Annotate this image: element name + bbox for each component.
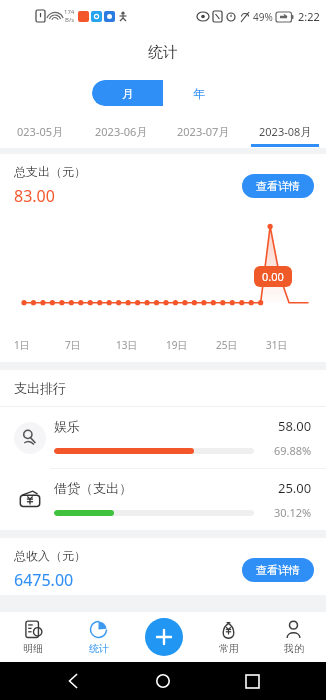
staticText: 6475.00 — [14, 569, 74, 591]
button[interactable]: 借贷（支出） — [0, 469, 326, 530]
staticText: 2023-06月 — [95, 124, 148, 139]
button[interactable]: Add record — [145, 618, 183, 656]
staticText: 娱乐 — [54, 418, 80, 434]
staticText: 我的 — [284, 642, 304, 655]
staticText: 总收入（元） — [14, 548, 86, 563]
staticText: 19日 — [166, 338, 188, 352]
staticText: 49% — [253, 10, 273, 24]
staticText: 统计 — [89, 642, 109, 655]
staticText: 7日 — [65, 338, 81, 352]
staticText: 总支出（元） — [14, 164, 86, 179]
staticText: 25.00 — [278, 479, 312, 497]
staticText: 58.00 — [278, 417, 312, 435]
staticText: 2023-08月 — [259, 124, 312, 139]
button[interactable]: Back — [59, 666, 89, 696]
button[interactable]: 统计 — [66, 612, 131, 662]
staticText: 查看详情 — [256, 563, 300, 577]
staticText: 25日 — [216, 338, 238, 352]
staticText: 年 — [193, 86, 205, 101]
button[interactable]: 娱乐 — [0, 407, 326, 468]
button[interactable]: Home — [148, 666, 178, 696]
button[interactable]: Recent apps — [237, 666, 267, 696]
staticText: 统计 — [148, 43, 178, 62]
button[interactable]: 023-05月 — [0, 114, 81, 148]
staticText: 83.00 — [14, 185, 55, 207]
button[interactable]: 2023-07月 — [162, 114, 244, 148]
staticText: 明细 — [23, 642, 43, 655]
button[interactable]: 月 — [92, 80, 163, 106]
staticText: B/s — [65, 16, 75, 24]
staticText: 023-05月 — [17, 124, 64, 139]
staticText: 2023-07月 — [177, 124, 230, 139]
staticText: 174 — [64, 8, 75, 16]
button[interactable]: 明细 — [0, 612, 66, 662]
button[interactable]: 常用 — [196, 612, 261, 662]
staticText: 常用 — [219, 642, 239, 655]
staticText: 30.12% — [274, 505, 312, 520]
staticText: 13日 — [116, 338, 138, 352]
staticText: 借贷（支出） — [54, 480, 132, 496]
button[interactable]: 我的 — [261, 612, 326, 662]
staticText: 1日 — [14, 338, 30, 352]
button[interactable]: 2023-08月 — [244, 114, 326, 148]
staticText: 69.88% — [274, 443, 312, 458]
button[interactable]: 查看详情 — [242, 174, 314, 198]
staticText: 0.00 — [262, 269, 284, 284]
staticText: 支出排行 — [14, 380, 66, 396]
button[interactable]: 年 — [163, 80, 235, 106]
button[interactable]: 2023-06月 — [81, 114, 162, 148]
button[interactable]: 查看详情 — [242, 558, 314, 582]
staticText: 月 — [122, 86, 134, 101]
staticText: 查看详情 — [256, 179, 300, 193]
staticText: 31日 — [266, 338, 288, 352]
staticText: 2:22 — [298, 9, 320, 24]
